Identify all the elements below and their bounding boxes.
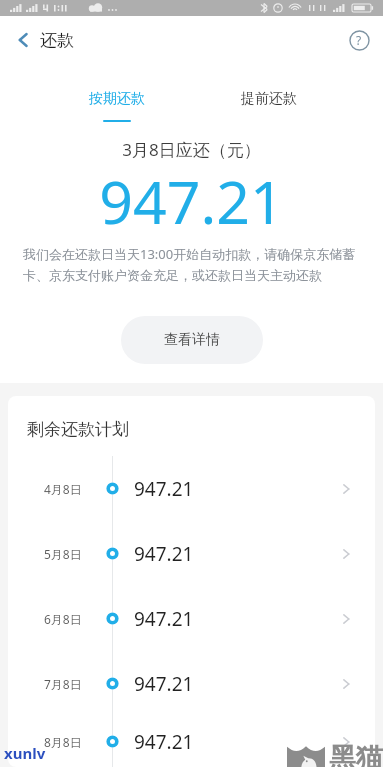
button[interactable]: 6月8日 [8, 586, 375, 651]
staticText: 947.21 [134, 541, 194, 567]
staticText: 947.21 [134, 606, 194, 632]
button[interactable]: 5月8日 [8, 521, 375, 586]
staticText: 947.21 [134, 671, 194, 697]
staticText: 947.21 [134, 729, 194, 755]
staticText: 我们会在还款日当天13:00开始自动扣款，请确保京东储蓄卡、京东支付账户资金充足… [23, 245, 360, 284]
staticText: 5月8日 [44, 546, 82, 562]
staticText: xunlv [4, 743, 46, 763]
button[interactable]: Help [347, 28, 371, 52]
button[interactable]: 7月8日 [8, 651, 375, 716]
staticText: 7月8日 [44, 676, 82, 692]
staticText: 6月8日 [44, 611, 82, 627]
staticText: 查看详情 [164, 331, 220, 349]
staticText: 4月8日 [44, 481, 82, 497]
staticText: 还款 [40, 30, 74, 51]
staticText: 947.21 [0, 161, 383, 241]
staticText: ? [356, 32, 362, 48]
staticText: 黑猫 [329, 741, 383, 767]
button[interactable]: 提前还款 [224, 64, 314, 122]
staticText: 提前还款 [241, 90, 297, 108]
staticText: 8月8日 [44, 734, 82, 750]
staticText: 947.21 [134, 476, 194, 502]
staticText: 剩余还款计划 [27, 419, 129, 440]
button[interactable]: 4月8日 [8, 456, 375, 521]
button[interactable]: 查看详情 [121, 316, 263, 364]
button[interactable]: Back [0, 17, 46, 63]
button[interactable]: 按期还款 [72, 64, 162, 122]
staticText: 按期还款 [89, 90, 145, 108]
staticText: 3月8日应还（元） [0, 138, 383, 161]
button[interactable]: 8月8日 [8, 716, 375, 767]
